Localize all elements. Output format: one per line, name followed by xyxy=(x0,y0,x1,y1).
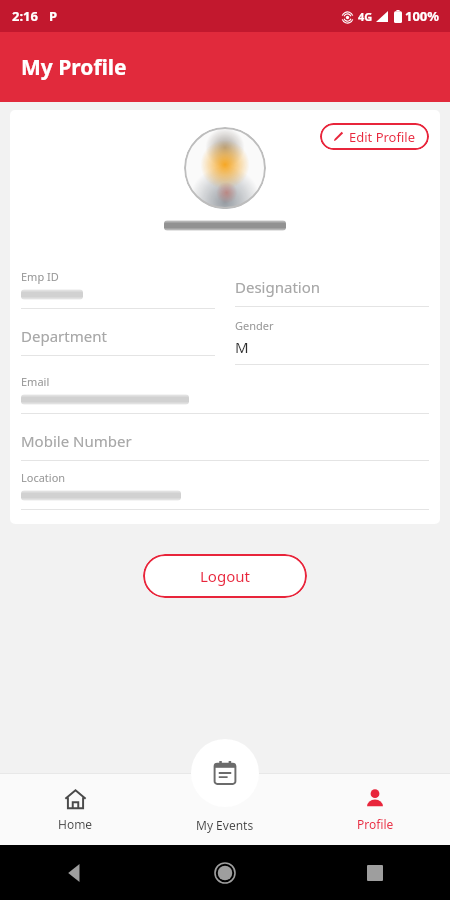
staticText: 4G xyxy=(358,9,373,24)
staticText: 2:16 xyxy=(12,7,38,25)
button[interactable]: Mobile Number xyxy=(21,414,429,461)
staticText: Emp ID xyxy=(21,269,59,284)
button[interactable]: Profile photo xyxy=(184,127,266,209)
button[interactable]: Home xyxy=(150,845,300,900)
staticText: Home xyxy=(58,816,93,832)
staticText: Logout xyxy=(200,566,250,586)
button[interactable]: Emp ID xyxy=(21,260,215,309)
button[interactable]: My Events xyxy=(191,739,259,807)
button[interactable]: Home xyxy=(0,773,150,845)
staticText: Edit Profile xyxy=(349,128,416,146)
staticText: Profile xyxy=(357,816,394,832)
staticText: My Profile xyxy=(21,53,127,82)
staticText: Designation xyxy=(235,277,321,297)
button[interactable]: Department xyxy=(21,309,215,356)
staticText: M xyxy=(235,337,249,357)
staticText: Email xyxy=(21,374,50,389)
button[interactable]: Edit Profile xyxy=(320,123,429,150)
staticText: Department xyxy=(21,326,107,346)
staticText: Mobile Number xyxy=(21,431,132,451)
button[interactable]: Profile xyxy=(300,773,450,845)
button[interactable]: Logout xyxy=(143,554,307,598)
staticText: Gender xyxy=(235,318,274,333)
staticText: Location xyxy=(21,470,66,485)
button[interactable]: Back xyxy=(0,845,150,900)
staticText: 100% xyxy=(405,7,440,25)
button[interactable]: Recent apps xyxy=(300,845,450,900)
staticText: P xyxy=(49,7,58,25)
button[interactable]: Email xyxy=(21,365,429,414)
button[interactable]: Gender xyxy=(235,309,429,365)
button[interactable]: Designation xyxy=(235,260,429,307)
button[interactable]: Location xyxy=(21,461,429,510)
staticText: My Events xyxy=(196,817,254,833)
button[interactable]: My Events xyxy=(150,773,300,845)
